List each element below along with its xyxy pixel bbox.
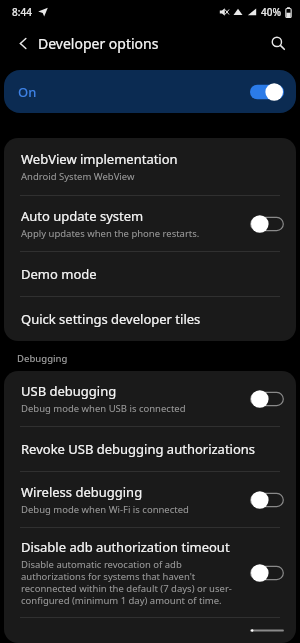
button[interactable]: 3GPP AT commands [4, 618, 296, 643]
button[interactable]: Auto update system [250, 213, 284, 235]
staticText: Disable automatic revocation of adb auth… [21, 558, 242, 607]
button[interactable]: USB debugging [4, 371, 296, 426]
staticText: Apply updates when the phone restarts. [21, 227, 200, 240]
staticText: Wireless debugging [21, 483, 143, 501]
staticText: Quick settings developer tiles [21, 310, 201, 328]
staticText: Debug mode when Wi-Fi is connected [21, 503, 189, 516]
staticText: 8:44 [12, 5, 32, 19]
other: Developer options on [250, 81, 284, 103]
button[interactable]: Disable adb authorization timeout [4, 528, 296, 617]
staticText: Revoke USB debugging authorizations [21, 440, 256, 458]
staticText: 40% [261, 5, 281, 19]
staticText: Demo mode [21, 265, 97, 283]
button[interactable]: 3GPP AT commands [250, 629, 284, 632]
button[interactable]: On [4, 70, 296, 113]
button[interactable]: Search [264, 29, 292, 57]
staticText: Debugging [17, 352, 68, 365]
staticText: WebView implementation [21, 150, 178, 168]
staticText: Android System WebView [21, 170, 135, 183]
staticText: Disable adb authorization timeout [21, 538, 230, 556]
staticText: On [18, 83, 250, 101]
button[interactable]: Revoke USB debugging authorizations [4, 427, 296, 471]
button[interactable]: Quick settings developer tiles [4, 297, 296, 341]
staticText: Developer options [38, 34, 159, 53]
staticText: USB debugging [21, 382, 117, 400]
staticText: Debug mode when USB is connected [21, 402, 186, 415]
button[interactable]: Back [10, 30, 36, 56]
staticText: Auto update system [21, 207, 144, 225]
button[interactable]: WebView implementation [4, 138, 296, 195]
button[interactable]: USB debugging [250, 388, 284, 410]
button[interactable]: Wireless debugging [250, 489, 284, 511]
button[interactable]: Auto update system [4, 196, 296, 251]
button[interactable]: Disable adb authorization timeout [250, 562, 284, 584]
button[interactable]: Demo mode [4, 252, 296, 296]
button[interactable]: Wireless debugging [4, 472, 296, 527]
